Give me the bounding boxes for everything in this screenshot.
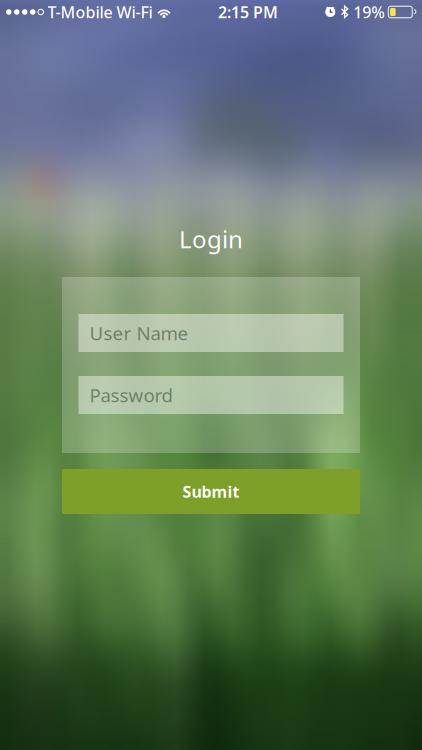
staticText: User Name <box>89 321 188 345</box>
button[interactable]: User Name <box>78 314 343 352</box>
button[interactable]: Submit <box>62 469 360 514</box>
staticText: 2:15 PM <box>218 1 278 23</box>
button[interactable]: Password <box>78 376 343 414</box>
staticText: 19% <box>353 1 385 23</box>
staticText: Submit <box>182 481 239 502</box>
staticText: T-Mobile Wi-Fi <box>47 1 152 23</box>
staticText: Password <box>89 383 172 407</box>
staticText: Login <box>179 223 243 255</box>
